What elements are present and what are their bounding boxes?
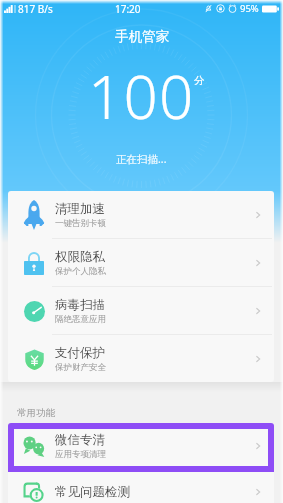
staticText: 微信专清: [55, 432, 105, 448]
button[interactable]: 微信专清: [8, 423, 274, 469]
button[interactable]: 清理加速: [8, 191, 274, 238]
staticText: 常用功能: [17, 407, 55, 419]
button[interactable]: 权限隐私: [8, 239, 274, 286]
staticText: 保护财产安全: [55, 362, 106, 373]
staticText: 常见问题检测: [55, 484, 130, 500]
staticText: 100: [88, 55, 195, 137]
staticText: 隔绝恶意应用: [55, 314, 106, 325]
staticText: 应用专项清理: [55, 449, 106, 460]
staticText: 支付保护: [55, 345, 105, 361]
staticText: 保护个人隐私: [55, 266, 106, 277]
button[interactable]: 支付保护: [8, 335, 274, 382]
staticText: 清理加速: [55, 201, 105, 217]
staticText: 一键告别卡顿: [55, 218, 106, 229]
staticText: 病毒扫描: [55, 297, 105, 313]
staticText: 17:20: [115, 2, 141, 16]
staticText: 权限隐私: [55, 249, 105, 265]
staticText: 正在扫描...: [116, 152, 167, 166]
staticText: 817 B/s: [18, 2, 53, 16]
staticText: 分: [194, 74, 205, 87]
staticText: 手机管家: [115, 28, 169, 45]
button[interactable]: 常见问题检测: [8, 468, 274, 503]
staticText: 95%: [240, 2, 259, 15]
button[interactable]: 病毒扫描: [8, 287, 274, 334]
